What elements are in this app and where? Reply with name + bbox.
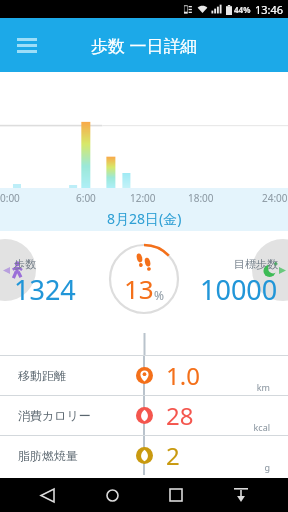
button[interactable]: Previous activity: [0, 239, 36, 301]
staticText: 2: [166, 439, 180, 472]
button[interactable]: Home: [95, 478, 129, 512]
staticText: 8月28日(金): [107, 209, 182, 228]
button[interactable]: Hide keyboard: [224, 478, 258, 512]
button[interactable]: Next activity: [252, 239, 288, 301]
staticText: 消費カロリー: [18, 408, 91, 423]
button[interactable]: Back: [30, 478, 64, 512]
staticText: 10000: [200, 271, 278, 308]
button[interactable]: 消費カロリー: [0, 395, 288, 435]
staticText: 44%: [234, 4, 251, 15]
staticText: km: [256, 381, 270, 393]
staticText: 移動距離: [18, 368, 66, 383]
staticText: g: [264, 461, 270, 473]
staticText: 13: [124, 271, 154, 306]
staticText: 目標歩数: [234, 257, 278, 271]
staticText: 脂肪燃焼量: [18, 448, 78, 463]
staticText: %: [154, 287, 164, 303]
staticText: 24:00: [262, 191, 288, 205]
staticText: 0:00: [0, 191, 20, 205]
staticText: 13:46: [255, 2, 284, 17]
staticText: 12:00: [130, 191, 156, 205]
staticText: 28: [166, 399, 194, 432]
staticText: kcal: [253, 421, 270, 433]
staticText: 18:00: [188, 191, 214, 205]
staticText: 1.0: [166, 359, 200, 392]
staticText: 歩数 一日詳細: [91, 34, 198, 57]
staticText: 1324: [14, 271, 76, 308]
button[interactable]: Recent apps: [159, 478, 193, 512]
staticText: 歩数: [14, 257, 36, 271]
button[interactable]: Menu: [10, 28, 44, 62]
button[interactable]: 脂肪燃焼量: [0, 435, 288, 475]
button[interactable]: 移動距離: [0, 355, 288, 395]
staticText: 6:00: [76, 191, 96, 205]
button[interactable]: 8月28日(金): [0, 205, 288, 231]
